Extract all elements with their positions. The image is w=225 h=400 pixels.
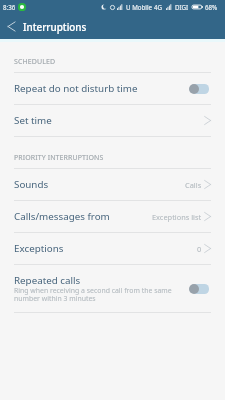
- button[interactable]: Exceptions: [0, 233, 225, 264]
- staticText: Calls/messages from: [14, 210, 110, 223]
- staticText: Calls: [185, 180, 202, 190]
- staticText: PRIORITY INTERRUPTIONS: [14, 153, 104, 163]
- button[interactable]: Calls/messages from: [0, 201, 225, 232]
- staticText: Exceptions: [14, 242, 64, 255]
- button[interactable]: Back: [0, 14, 23, 39]
- staticText: Repeat do not disturb time: [14, 82, 138, 95]
- staticText: 68%: [205, 3, 218, 11]
- button[interactable]: Sounds: [0, 169, 225, 200]
- staticText: Exceptions list: [152, 212, 202, 222]
- staticText: U Mobile: [126, 3, 152, 11]
- button[interactable]: Repeated calls: [0, 265, 225, 312]
- staticText: Sounds: [14, 178, 49, 191]
- button[interactable]: Toggle: [189, 283, 209, 294]
- staticText: SCHEDULED: [14, 57, 56, 67]
- staticText: 4G: [154, 3, 163, 11]
- staticText: Interruptions: [23, 20, 87, 33]
- button[interactable]: Set time: [0, 105, 225, 136]
- button[interactable]: Repeat do not disturb time: [0, 73, 225, 104]
- button[interactable]: Toggle: [189, 83, 209, 94]
- staticText: Ring when receiving a second call from t…: [14, 286, 172, 303]
- staticText: Repeated calls: [14, 274, 81, 287]
- staticText: DIGI: [175, 3, 189, 11]
- staticText: Set time: [14, 114, 52, 127]
- staticText: 0: [197, 244, 202, 254]
- staticText: 8:36: [3, 3, 16, 11]
